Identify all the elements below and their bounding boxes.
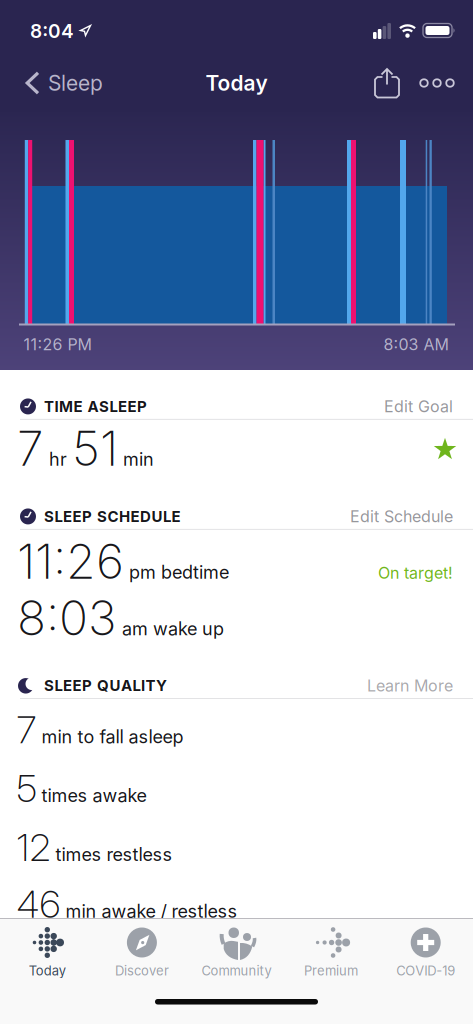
button[interactable]: COVID-19 bbox=[378, 927, 473, 978]
staticText: Discover bbox=[115, 963, 169, 978]
staticText: 7 hr 51 min bbox=[17, 420, 154, 476]
staticText: On target! bbox=[378, 563, 453, 582]
staticText: SLEEP QUALITY bbox=[44, 677, 167, 694]
staticText: Premium bbox=[304, 963, 358, 978]
button[interactable]: Share bbox=[374, 67, 400, 98]
staticText: COVID-19 bbox=[396, 963, 455, 978]
staticText: 46 min awake / restless bbox=[16, 881, 237, 926]
button[interactable]: Learn More bbox=[367, 676, 453, 695]
staticText: 11:26 PM bbox=[23, 335, 91, 354]
staticText: 7 min to fall asleep bbox=[16, 707, 183, 752]
button[interactable]: Discover bbox=[95, 927, 189, 978]
staticText: 12 times restless bbox=[16, 825, 172, 869]
staticText: 5 times awake bbox=[16, 766, 146, 811]
staticText: TIME ASLEEP bbox=[44, 398, 147, 415]
staticText: Community bbox=[201, 963, 271, 978]
button[interactable]: Today bbox=[0, 927, 95, 978]
staticText: 8:04 bbox=[30, 20, 74, 42]
staticText: Edit Schedule bbox=[350, 507, 453, 526]
button[interactable]: Sleep bbox=[25, 71, 103, 95]
button[interactable]: More bbox=[420, 78, 454, 88]
staticText: 8:03 AM bbox=[383, 335, 448, 354]
staticText: SLEEP SCHEDULE bbox=[44, 508, 180, 525]
staticText: Today bbox=[29, 963, 66, 978]
button[interactable]: Community bbox=[189, 927, 284, 978]
staticText: Learn More bbox=[367, 676, 453, 695]
staticText: Today bbox=[205, 71, 267, 95]
button[interactable]: Premium bbox=[284, 927, 378, 978]
staticText: 8:03 am wake up bbox=[17, 589, 224, 646]
button[interactable]: Edit Schedule bbox=[350, 507, 453, 526]
staticText: 11:26 pm bedtime bbox=[17, 533, 229, 589]
staticText: Sleep bbox=[48, 71, 103, 95]
staticText: Edit Goal bbox=[384, 397, 453, 416]
button[interactable]: Edit Goal bbox=[384, 397, 453, 416]
